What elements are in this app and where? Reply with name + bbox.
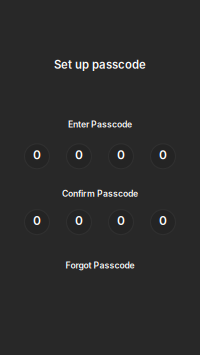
- staticText: 0: [117, 147, 125, 162]
- button[interactable]: Enter passcode digit 2: [66, 144, 91, 169]
- button[interactable]: Enter passcode digit 3: [108, 144, 133, 169]
- staticText: 0: [75, 147, 83, 162]
- button[interactable]: Enter passcode digit 4: [150, 144, 175, 169]
- staticText: Enter Passcode: [68, 119, 132, 130]
- button[interactable]: Confirm passcode digit 1: [24, 210, 49, 235]
- button[interactable]: Confirm passcode digit 4: [150, 210, 175, 235]
- button[interactable]: Forgot Passcode: [55, 257, 144, 274]
- staticText: 0: [75, 213, 83, 228]
- staticText: 0: [159, 147, 167, 162]
- staticText: 0: [33, 213, 41, 228]
- staticText: 0: [159, 213, 167, 228]
- staticText: Forgot Passcode: [65, 260, 134, 271]
- staticText: 0: [117, 213, 125, 228]
- button[interactable]: Confirm passcode digit 3: [108, 210, 133, 235]
- button[interactable]: Confirm passcode digit 2: [66, 210, 91, 235]
- button[interactable]: Enter passcode digit 1: [24, 144, 49, 169]
- staticText: Set up passcode: [54, 58, 146, 71]
- staticText: Confirm Passcode: [62, 188, 138, 199]
- staticText: 0: [33, 147, 41, 162]
